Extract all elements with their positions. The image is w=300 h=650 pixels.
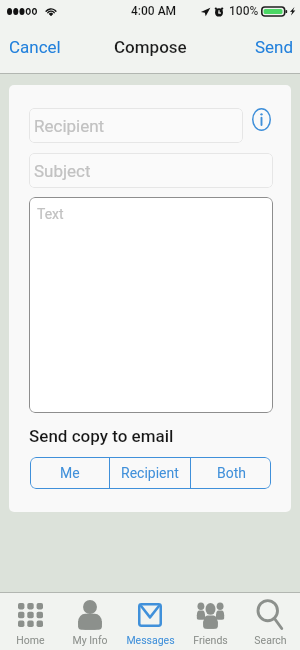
staticText: Both — [217, 465, 246, 481]
button[interactable]: Messages — [120, 592, 180, 650]
staticText: Messages — [126, 634, 175, 646]
staticText: Me — [60, 465, 80, 481]
button[interactable]: Search — [240, 592, 300, 650]
staticText: 100% — [229, 4, 259, 18]
button[interactable]: Subject — [29, 153, 273, 188]
button[interactable]: Cancel — [0, 28, 70, 66]
staticText: Recipient — [34, 116, 105, 136]
staticText: Recipient — [121, 465, 179, 481]
staticText: Cancel — [9, 37, 61, 57]
button[interactable]: Recipient — [29, 108, 243, 143]
staticText: 4:00 AM — [131, 4, 177, 18]
staticText: Subject — [34, 161, 91, 181]
button[interactable]: Text — [29, 197, 273, 413]
staticText: Search — [254, 634, 287, 646]
staticText: Send copy to email — [29, 426, 174, 446]
button[interactable]: Recipient — [110, 457, 190, 489]
button[interactable]: My Info — [60, 592, 120, 650]
staticText: Compose — [114, 37, 187, 57]
staticText: Text — [37, 206, 64, 222]
button[interactable]: Recipient info — [252, 108, 271, 131]
staticText: Home — [16, 634, 45, 646]
staticText: Friends — [193, 634, 228, 646]
button[interactable]: Home — [0, 592, 60, 650]
staticText: Send — [255, 37, 294, 57]
button[interactable]: Send — [246, 28, 300, 66]
button[interactable]: Both — [191, 457, 271, 489]
button[interactable]: Friends — [180, 592, 240, 650]
button[interactable]: Me — [30, 457, 109, 489]
staticText: My Info — [72, 634, 108, 646]
